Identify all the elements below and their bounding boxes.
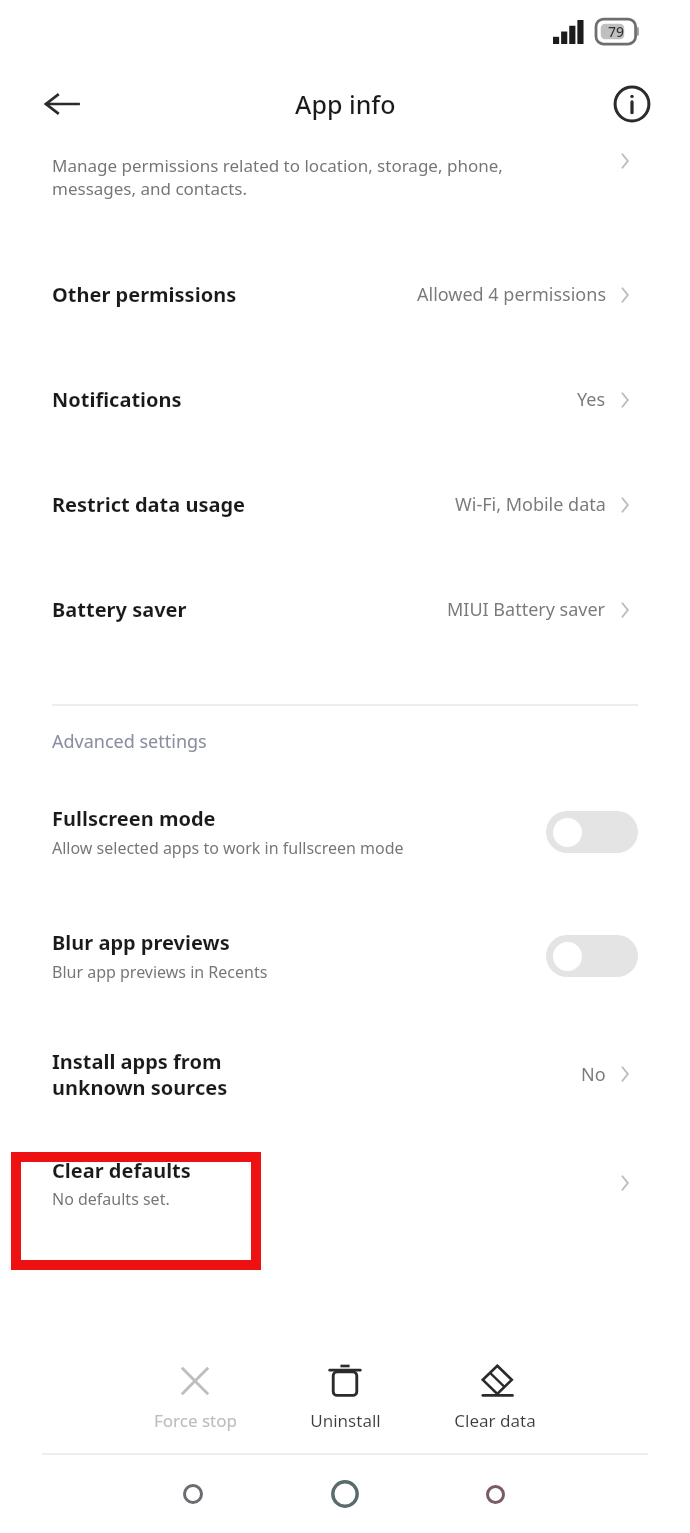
button[interactable]: Restrict data usage <box>0 452 690 557</box>
button[interactable]: Back <box>34 76 90 132</box>
button[interactable]: Other permissions <box>0 242 690 347</box>
staticText: Fullscreen mode <box>52 805 216 832</box>
button[interactable]: Force stop <box>120 1356 270 1438</box>
staticText: Notifications <box>52 386 182 413</box>
staticText: Yes <box>577 387 606 412</box>
staticText: Battery saver <box>52 596 187 623</box>
button[interactable]: Fullscreen mode <box>0 776 690 888</box>
staticText: Allowed 4 permissions <box>417 282 606 307</box>
staticText: Advanced settings <box>52 729 207 754</box>
button[interactable]: Clear defaults <box>0 1124 690 1242</box>
button[interactable]: Clear data <box>420 1356 570 1438</box>
staticText: Force stop <box>154 1409 237 1432</box>
button[interactable]: Blur app previews <box>0 900 690 1012</box>
button[interactable]: Install apps from unknown sources <box>0 1024 690 1124</box>
staticText: No <box>581 1062 606 1087</box>
button[interactable]: Home <box>307 1456 383 1532</box>
staticText: Restrict data usage <box>52 491 245 518</box>
staticText: Manage permissions related to location, … <box>52 154 503 200</box>
button[interactable]: Recents <box>155 1456 231 1532</box>
button[interactable]: App details <box>606 78 658 130</box>
staticText: MIUI Battery saver <box>447 597 606 622</box>
staticText: Uninstall <box>310 1409 381 1432</box>
staticText: Other permissions <box>52 281 237 308</box>
staticText: Clear defaults <box>52 1157 191 1184</box>
button[interactable]: Manage permissions related to location, … <box>0 146 690 242</box>
staticText: Blur app previews in Recents <box>52 961 268 983</box>
staticText: App info <box>295 87 396 121</box>
button[interactable]: Back <box>457 1456 533 1532</box>
staticText: 79 <box>608 22 625 41</box>
staticText: Wi-Fi, Mobile data <box>455 492 606 517</box>
button[interactable]: Notifications <box>0 347 690 452</box>
staticText: Install apps from unknown sources <box>52 1048 228 1101</box>
button[interactable]: Battery saver <box>0 557 690 662</box>
staticText: Clear data <box>454 1409 536 1432</box>
staticText: Allow selected apps to work in fullscree… <box>52 837 404 859</box>
staticText: No defaults set. <box>52 1188 170 1210</box>
button[interactable]: Uninstall <box>270 1356 420 1438</box>
staticText: Blur app previews <box>52 929 230 956</box>
